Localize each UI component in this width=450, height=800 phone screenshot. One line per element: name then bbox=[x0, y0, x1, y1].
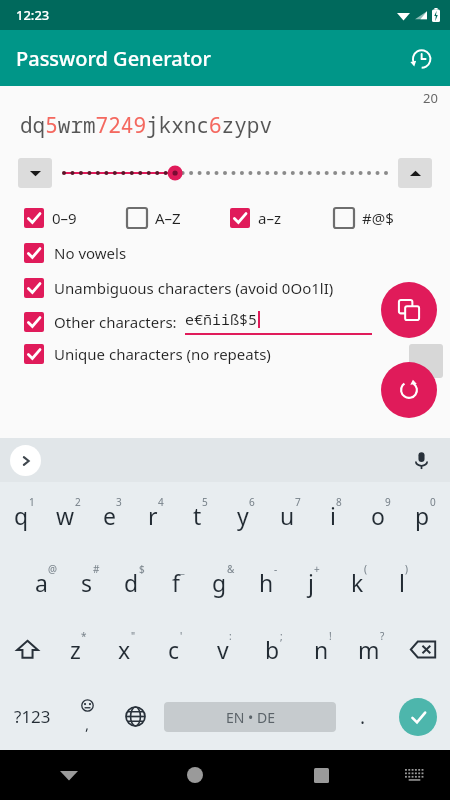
staticText: b bbox=[265, 634, 280, 665]
staticText: _ bbox=[180, 562, 185, 576]
button[interactable]: #@$ bbox=[334, 208, 438, 228]
button[interactable]: d bbox=[112, 549, 156, 616]
button[interactable]: Other characters: bbox=[24, 312, 177, 332]
button[interactable]: Backspace bbox=[396, 616, 450, 683]
staticText: v bbox=[217, 634, 229, 665]
button[interactable]: y bbox=[223, 482, 268, 549]
button[interactable]: z bbox=[54, 616, 102, 683]
button[interactable]: x bbox=[102, 616, 151, 683]
button[interactable]: A–Z bbox=[127, 208, 230, 228]
staticText: y bbox=[237, 500, 249, 531]
button[interactable]: 0–9 bbox=[24, 208, 127, 228]
staticText: dq5wrm7249jkxnc6zypv bbox=[20, 111, 272, 140]
button[interactable]: EN • DE bbox=[164, 702, 336, 732]
button[interactable]: e bbox=[90, 482, 134, 549]
button[interactable]: j bbox=[291, 549, 336, 616]
button[interactable]: b bbox=[249, 616, 298, 683]
staticText: EN • DE bbox=[226, 708, 275, 727]
button[interactable]: No vowels bbox=[24, 243, 360, 263]
staticText: k bbox=[351, 567, 364, 598]
button[interactable]: Increase length bbox=[398, 158, 432, 188]
button[interactable] bbox=[64, 156, 386, 190]
button[interactable]: w bbox=[46, 482, 90, 549]
staticText: x bbox=[118, 634, 131, 665]
staticText: , bbox=[85, 714, 90, 734]
staticText: i bbox=[330, 500, 336, 531]
button[interactable]: s bbox=[68, 549, 112, 616]
button[interactable]: u bbox=[268, 482, 313, 549]
staticText: * bbox=[81, 629, 87, 643]
staticText: ! bbox=[329, 629, 332, 643]
button[interactable]: o bbox=[358, 482, 403, 549]
staticText: 20 bbox=[423, 89, 438, 107]
staticText: $ bbox=[139, 562, 145, 576]
staticText: Other characters: bbox=[54, 312, 177, 332]
button[interactable]: Decrease length bbox=[18, 158, 52, 188]
staticText: ' bbox=[180, 629, 183, 643]
button[interactable]: g bbox=[201, 549, 246, 616]
staticText: 1 bbox=[29, 495, 35, 509]
button[interactable]: t bbox=[178, 482, 223, 549]
staticText: s bbox=[81, 567, 93, 598]
staticText: @ bbox=[48, 562, 57, 576]
staticText: r bbox=[148, 500, 158, 531]
button[interactable]: History bbox=[398, 36, 442, 80]
staticText: ; bbox=[280, 629, 283, 643]
button[interactable]: . bbox=[340, 683, 386, 750]
staticText: - bbox=[274, 562, 278, 576]
button[interactable]: q bbox=[2, 482, 46, 549]
button[interactable]: Recent apps bbox=[258, 750, 384, 800]
button[interactable]: p bbox=[403, 482, 448, 549]
button[interactable]: i bbox=[313, 482, 358, 549]
button[interactable]: Voice input bbox=[406, 445, 436, 475]
button[interactable]: n bbox=[298, 616, 347, 683]
staticText: p bbox=[415, 500, 430, 531]
staticText: ( bbox=[364, 562, 367, 576]
button[interactable]: e€ñiiß$5 bbox=[185, 309, 372, 335]
staticText: m bbox=[358, 634, 380, 665]
staticText: Password Generator bbox=[16, 45, 211, 72]
button[interactable]: f bbox=[156, 549, 201, 616]
button[interactable]: m bbox=[347, 616, 396, 683]
button[interactable]: Copy password bbox=[381, 282, 437, 338]
button[interactable]: k bbox=[336, 549, 381, 616]
button[interactable]: v bbox=[200, 616, 249, 683]
staticText: u bbox=[280, 500, 295, 531]
staticText: 5 bbox=[202, 495, 208, 509]
button[interactable]: l bbox=[381, 549, 426, 616]
button[interactable]: Home bbox=[132, 750, 258, 800]
staticText: 3 bbox=[116, 495, 122, 509]
staticText: Unique characters (no repeats) bbox=[54, 344, 271, 364]
button[interactable]: Switch keyboard bbox=[384, 750, 444, 800]
button[interactable]: Unambiguous characters (avoid 0Oo1lI) bbox=[24, 278, 360, 298]
staticText: A–Z bbox=[155, 208, 181, 228]
staticText: o bbox=[371, 500, 385, 531]
staticText: ?123 bbox=[14, 705, 51, 728]
staticText: 2 bbox=[75, 495, 81, 509]
button[interactable]: a bbox=[24, 549, 68, 616]
staticText: e bbox=[103, 500, 116, 531]
button[interactable]: Emoji bbox=[64, 683, 110, 750]
button[interactable]: Back bbox=[6, 750, 132, 800]
button[interactable]: c bbox=[151, 616, 200, 683]
button[interactable]: Change language bbox=[110, 683, 160, 750]
button[interactable]: Enter bbox=[386, 683, 450, 750]
button[interactable]: Expand toolbar bbox=[10, 445, 41, 476]
staticText: c bbox=[168, 634, 180, 665]
staticText: & bbox=[227, 562, 235, 576]
staticText: Unambiguous characters (avoid 0Oo1lI) bbox=[54, 278, 334, 298]
button[interactable]: Regenerate password bbox=[381, 362, 437, 418]
button[interactable]: a–z bbox=[230, 208, 334, 228]
staticText: : bbox=[229, 629, 232, 643]
button[interactable]: Unique characters (no repeats) bbox=[24, 344, 360, 364]
button[interactable]: h bbox=[246, 549, 291, 616]
staticText: 0 bbox=[430, 495, 436, 509]
button[interactable]: ?123 bbox=[0, 683, 64, 750]
button[interactable]: Shift bbox=[0, 616, 54, 683]
staticText: q bbox=[14, 500, 29, 531]
staticText: # bbox=[93, 562, 100, 576]
staticText: . bbox=[360, 704, 366, 730]
staticText: 8 bbox=[336, 495, 342, 509]
staticText: ? bbox=[380, 629, 385, 643]
button[interactable]: r bbox=[134, 482, 178, 549]
